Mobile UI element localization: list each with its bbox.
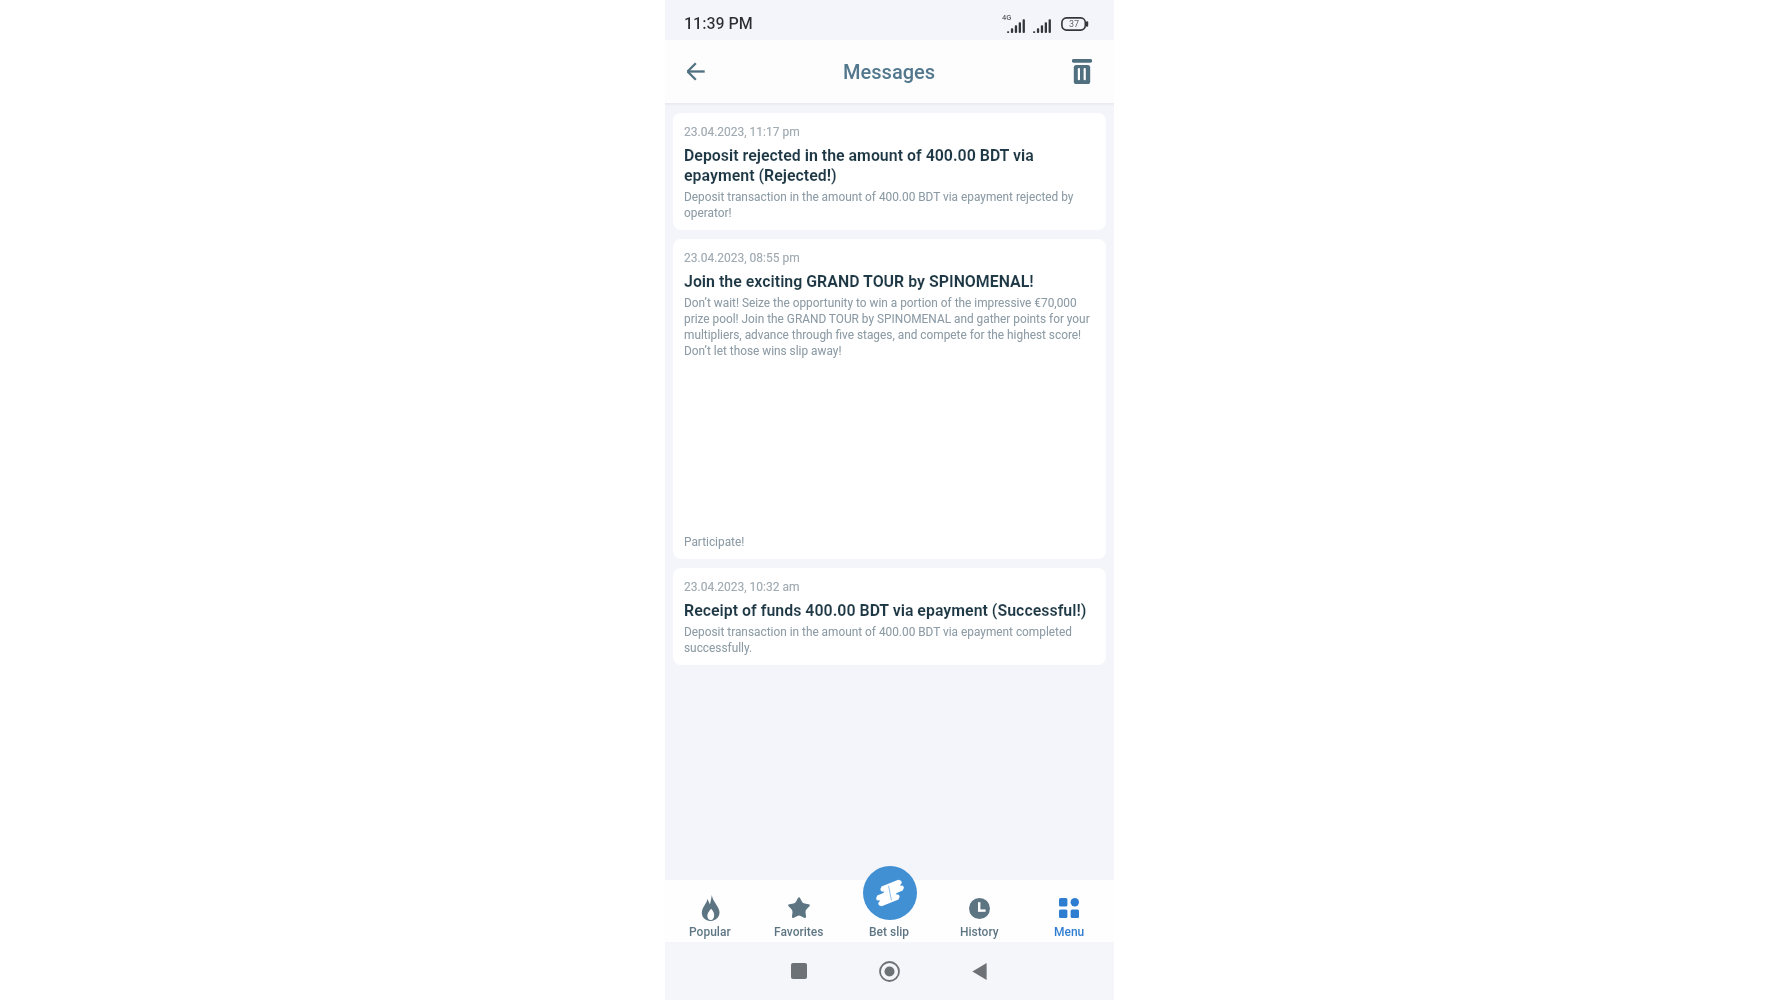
staticText: 23.04.2023, 08:55 pm [684, 249, 800, 265]
button[interactable]: Back [675, 51, 715, 91]
button[interactable]: History [934, 880, 1024, 942]
button[interactable]: Recent apps [754, 942, 844, 1000]
button[interactable]: 23.04.2023, 10:32 am [673, 568, 1106, 665]
button[interactable]: 23.04.2023, 11:17 pm [673, 113, 1106, 230]
button[interactable]: Back [934, 942, 1024, 1000]
staticText: Receipt of funds 400.00 BDT via epayment… [684, 600, 1087, 620]
staticText: Deposit rejected in the amount of 400.00… [684, 145, 1095, 185]
staticText: Join the exciting GRAND TOUR by SPINOMEN… [684, 271, 1034, 291]
button[interactable]: Bet slip [863, 866, 917, 920]
staticText: Bet slip [869, 925, 910, 939]
button[interactable]: Popular [665, 880, 754, 942]
button[interactable]: Menu [1024, 880, 1114, 942]
staticText: Deposit transaction in the amount of 400… [684, 623, 1095, 655]
button[interactable]: 23.04.2023, 08:55 pm [673, 239, 1106, 559]
staticText: 23.04.2023, 11:17 pm [684, 123, 800, 139]
staticText: 4G [1002, 13, 1012, 22]
staticText: Deposit transaction in the amount of 400… [684, 188, 1095, 220]
staticText: Menu [1054, 925, 1085, 939]
button[interactable]: Bet slip [844, 880, 934, 942]
staticText: Don’t wait! Seize the opportunity to win… [684, 294, 1095, 358]
staticText: 37 [1069, 19, 1080, 30]
staticText: 23.04.2023, 10:32 am [684, 578, 800, 594]
staticText: History [960, 925, 999, 939]
staticText: Messages [843, 60, 936, 83]
button[interactable]: Delete all messages [1062, 51, 1102, 91]
staticText: Popular [689, 925, 731, 939]
button[interactable]: Home [844, 942, 934, 1000]
staticText: 11:39 PM [684, 14, 753, 33]
staticText: Participate! [684, 533, 745, 549]
staticText: Favorites [774, 925, 824, 939]
button[interactable]: Favorites [754, 880, 844, 942]
